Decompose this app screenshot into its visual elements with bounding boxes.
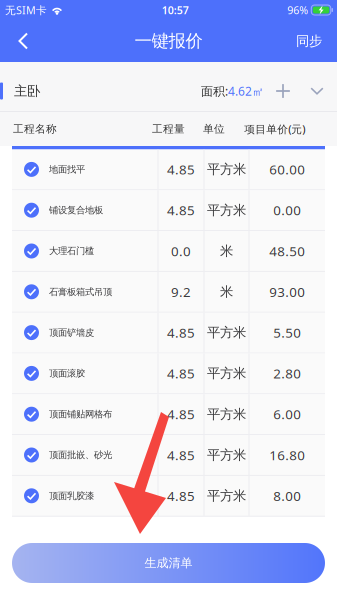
staticText: 4.85 <box>167 324 195 341</box>
staticText: 0.0 <box>171 242 191 260</box>
staticText: 4.85 <box>167 201 195 219</box>
staticText: 米 <box>220 243 233 259</box>
staticText: 顶面批嵌、砂光 <box>49 449 112 461</box>
staticText: 顶面铲墙皮 <box>49 327 94 338</box>
staticText: 平方米 <box>207 406 246 422</box>
button[interactable]: 大理石门槛 <box>12 231 325 271</box>
staticText: 4.62㎡ <box>228 83 264 99</box>
staticText: 同步 <box>296 33 322 49</box>
staticText: 6.00 <box>273 405 301 423</box>
button[interactable]: 展开 <box>302 76 332 106</box>
staticText: 2.80 <box>273 364 301 382</box>
staticText: 0.00 <box>273 201 301 219</box>
staticText: 顶面铺贴网格布 <box>49 408 112 420</box>
staticText: 8.00 <box>273 487 301 505</box>
button[interactable]: 铺设复合地板 <box>12 190 325 230</box>
staticText: 工程名称 <box>13 122 57 135</box>
button[interactable]: 石膏板箱式吊顶 <box>12 272 325 312</box>
staticText: 大理石门槛 <box>49 245 94 257</box>
staticText: 平方米 <box>207 324 246 341</box>
staticText: 平方米 <box>207 202 246 218</box>
staticText: 平方米 <box>207 161 246 178</box>
staticText: 10:57 <box>162 3 189 17</box>
button[interactable]: 添加 <box>264 76 302 106</box>
staticText: 93.00 <box>269 283 305 301</box>
button[interactable]: 同步 <box>281 20 337 62</box>
staticText: 5.50 <box>273 324 301 341</box>
staticText: 4.85 <box>167 364 195 382</box>
staticText: 铺设复合地板 <box>49 204 103 216</box>
staticText: 米 <box>220 284 233 300</box>
staticText: 顶面乳胶漆 <box>49 490 94 502</box>
button[interactable]: 顶面批嵌、砂光 <box>12 435 325 475</box>
staticText: 平方米 <box>207 365 246 382</box>
staticText: 16.80 <box>269 446 305 464</box>
button[interactable]: 生成清单 <box>12 543 325 583</box>
staticText: 9.2 <box>171 283 191 301</box>
button[interactable]: 顶面铺贴网格布 <box>12 394 325 434</box>
staticText: 平方米 <box>207 488 246 504</box>
staticText: 96% <box>287 3 308 17</box>
button[interactable]: 顶面乳胶漆 <box>12 476 325 516</box>
staticText: 4.85 <box>167 487 195 505</box>
staticText: 单位 <box>203 122 225 135</box>
button[interactable]: 返回 <box>0 20 46 62</box>
staticText: 石膏板箱式吊顶 <box>49 286 112 298</box>
staticText: 一键报价 <box>134 30 202 52</box>
staticText: 4.85 <box>167 405 195 423</box>
staticText: 4.85 <box>167 446 195 464</box>
button[interactable]: 地面找平 <box>12 149 325 189</box>
staticText: 地面找平 <box>49 164 85 175</box>
staticText: 60.00 <box>269 160 305 178</box>
staticText: 项目单价(元) <box>244 122 305 136</box>
staticText: 平方米 <box>207 447 246 463</box>
staticText: 4.85 <box>167 160 195 178</box>
staticText: 顶面滚胶 <box>49 368 85 379</box>
button[interactable]: 顶面铲墙皮 <box>12 313 325 352</box>
staticText: 无SIM卡 <box>5 3 47 17</box>
staticText: 面积: <box>201 83 228 99</box>
staticText: 生成清单 <box>144 556 192 570</box>
staticText: 主卧 <box>14 83 40 99</box>
staticText: 工程量 <box>152 122 185 135</box>
staticText: 48.50 <box>269 242 305 260</box>
button[interactable]: 顶面滚胶 <box>12 353 325 393</box>
